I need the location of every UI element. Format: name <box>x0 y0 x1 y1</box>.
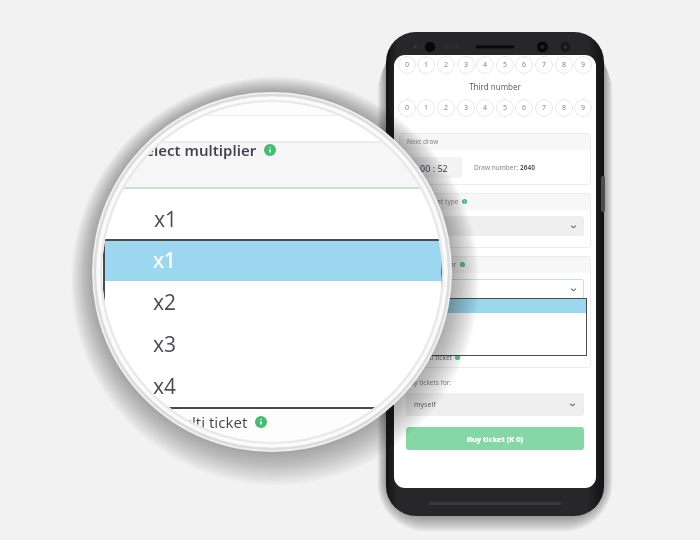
button[interactable]: 9 <box>574 99 592 117</box>
staticText: x2 <box>153 288 177 317</box>
staticText: myself <box>414 400 436 410</box>
staticText: 0 <box>405 60 410 70</box>
staticText: Multi ticket <box>169 412 248 432</box>
staticText: 7 <box>542 103 547 113</box>
button[interactable]: 4 <box>476 99 494 117</box>
staticText: 8 <box>562 103 567 113</box>
button[interactable]: x1 <box>103 187 442 252</box>
staticText: 3 <box>464 103 469 113</box>
button[interactable]: 8 <box>555 99 573 117</box>
button[interactable]: 2 <box>437 99 455 117</box>
button[interactable]: x1 <box>103 239 442 281</box>
button[interactable]: myself <box>406 393 584 416</box>
button[interactable]: x2 <box>406 313 587 328</box>
button[interactable]: 0 <box>398 99 416 117</box>
staticText: 4 <box>483 103 488 113</box>
button[interactable]: x3 <box>103 323 442 365</box>
staticText: Next draw <box>407 137 439 146</box>
button[interactable]: 5 <box>496 56 514 74</box>
staticText: 6 <box>522 60 527 70</box>
button[interactable]: 3 <box>457 99 475 117</box>
button[interactable]: x3 <box>406 328 587 343</box>
staticText: 2640 <box>520 163 535 172</box>
button[interactable]: x1 <box>406 298 587 313</box>
button[interactable]: 9 <box>574 56 592 74</box>
staticText: Draw number: <box>474 163 520 172</box>
staticText: Buy ticket (K 0) <box>467 434 524 444</box>
staticText: 5 <box>503 60 508 70</box>
button[interactable]: 5 <box>496 99 514 117</box>
staticText: 2 <box>444 60 449 70</box>
button[interactable]: 3 <box>457 56 475 74</box>
staticText: 4 <box>483 60 488 70</box>
staticText: Select multiplier <box>137 140 257 160</box>
staticText: x4 <box>153 372 177 401</box>
button[interactable]: x4 <box>406 343 587 356</box>
staticText: 0 <box>405 103 410 113</box>
button[interactable]: Buy ticket (K 0) <box>406 427 584 450</box>
staticText: 5 <box>503 103 508 113</box>
staticText: Select ticket type <box>407 197 459 206</box>
button[interactable]: Select option <box>406 279 584 299</box>
button[interactable]: 4 <box>476 56 494 74</box>
staticText: 7 <box>542 60 547 70</box>
button[interactable]: 7 <box>535 56 553 74</box>
button[interactable]: 1 <box>417 99 435 117</box>
button[interactable]: Select option <box>406 216 584 236</box>
staticText: Multi ticket <box>418 353 452 362</box>
staticText: 9 <box>581 60 586 70</box>
staticText: x1 <box>153 246 177 275</box>
staticText: Select multiplier <box>407 260 457 269</box>
button[interactable]: x4 <box>103 365 442 407</box>
staticText: 3 <box>464 60 469 70</box>
staticText: 8 <box>562 60 567 70</box>
button[interactable]: 2 <box>437 56 455 74</box>
staticText: 00 : 52 <box>420 162 448 174</box>
staticText: Third number <box>394 81 596 92</box>
button[interactable]: x2 <box>103 281 442 323</box>
button[interactable]: 6 <box>515 99 533 117</box>
button[interactable]: 1 <box>417 56 435 74</box>
staticText: x1 <box>154 205 178 234</box>
button[interactable]: 8 <box>555 56 573 74</box>
staticText: x3 <box>153 330 177 359</box>
button[interactable]: 7 <box>535 99 553 117</box>
staticText: 9 <box>581 103 586 113</box>
button[interactable]: 6 <box>515 56 533 74</box>
staticText: 6 <box>522 103 527 113</box>
staticText: 1 <box>424 103 429 113</box>
staticText: 2 <box>444 103 449 113</box>
button[interactable]: 0 <box>398 56 416 74</box>
staticText: Buy tickets for: <box>406 378 452 387</box>
staticText: 1 <box>424 60 429 70</box>
